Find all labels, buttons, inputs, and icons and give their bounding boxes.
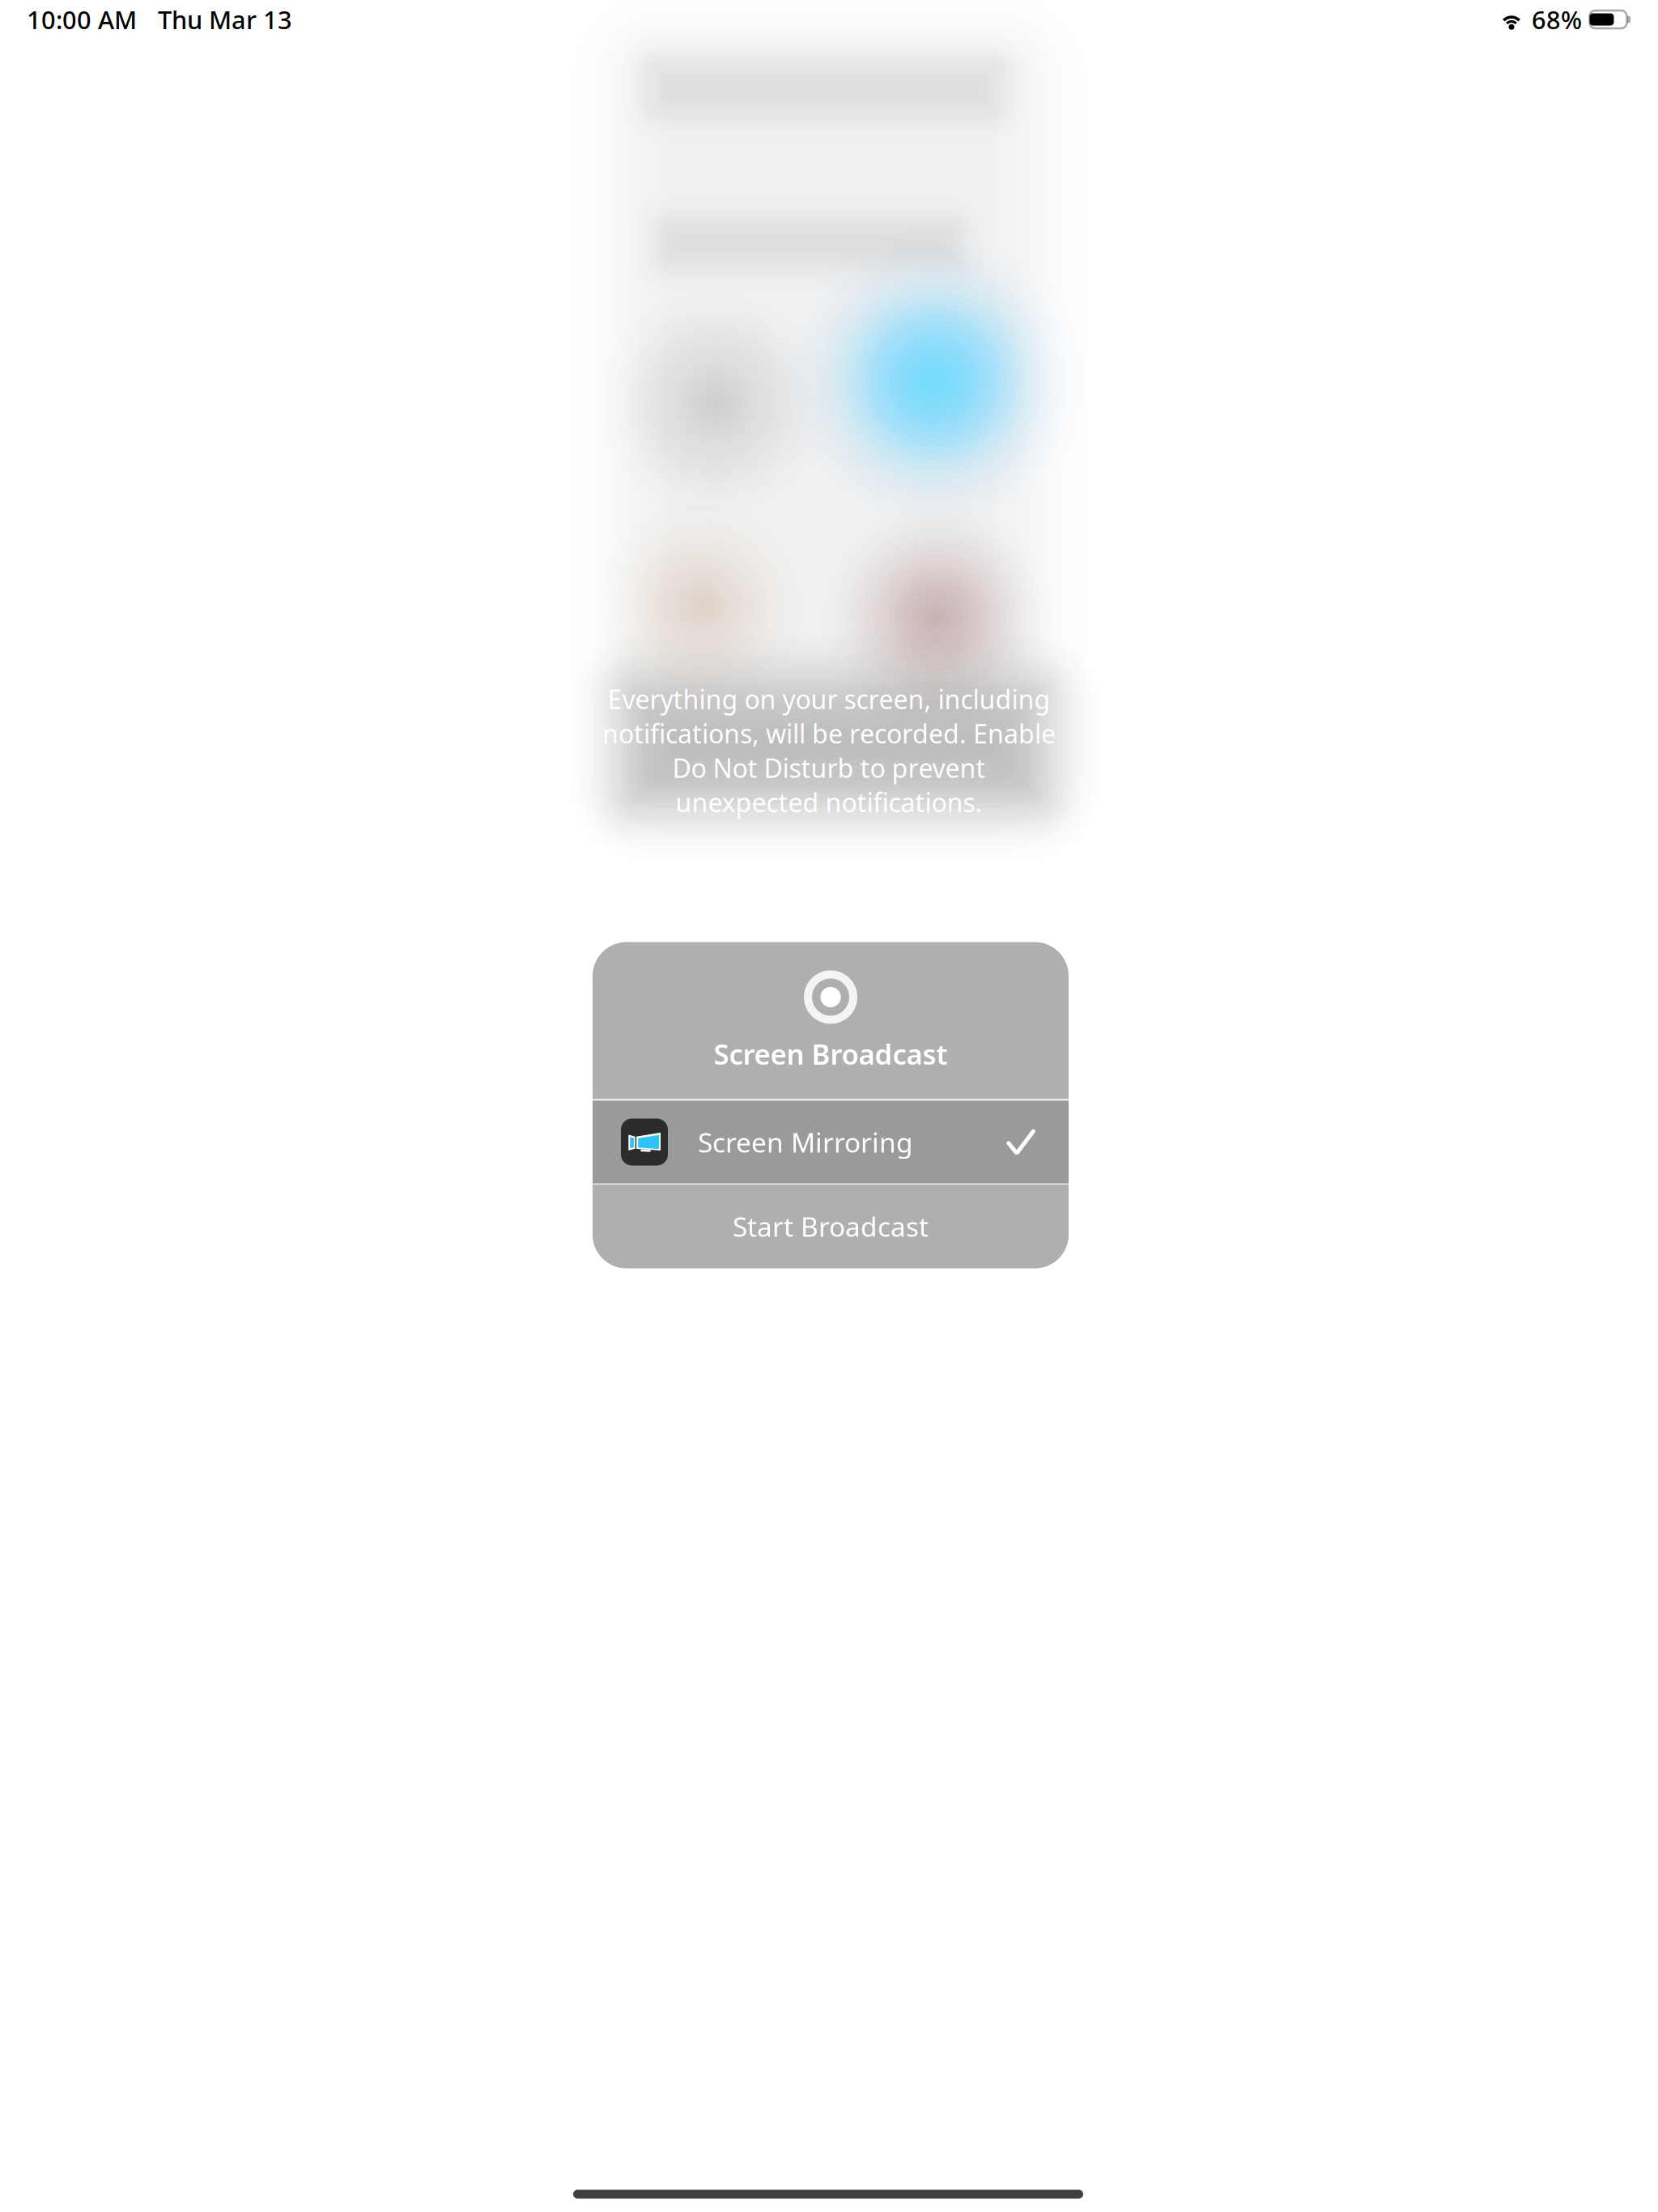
staticText: Thu Mar 13: [158, 3, 292, 36]
staticText: unexpected notifications.: [676, 785, 982, 819]
button[interactable]: Start Broadcast: [593, 1185, 1069, 1268]
staticText: Do Not Disturb to prevent: [672, 751, 986, 785]
staticText: 68%: [1532, 3, 1582, 36]
staticText: Screen Mirroring: [698, 1124, 913, 1160]
staticText: Start Broadcast: [733, 1208, 929, 1244]
staticText: Everything on your screen, including: [608, 682, 1050, 716]
staticText: Screen Broadcast: [714, 1035, 948, 1072]
button[interactable]: Screen Mirroring, selected: [593, 1101, 1069, 1183]
staticText: 10:00 AM: [27, 3, 137, 36]
staticText: notifications, will be recorded. Enable: [602, 716, 1056, 751]
